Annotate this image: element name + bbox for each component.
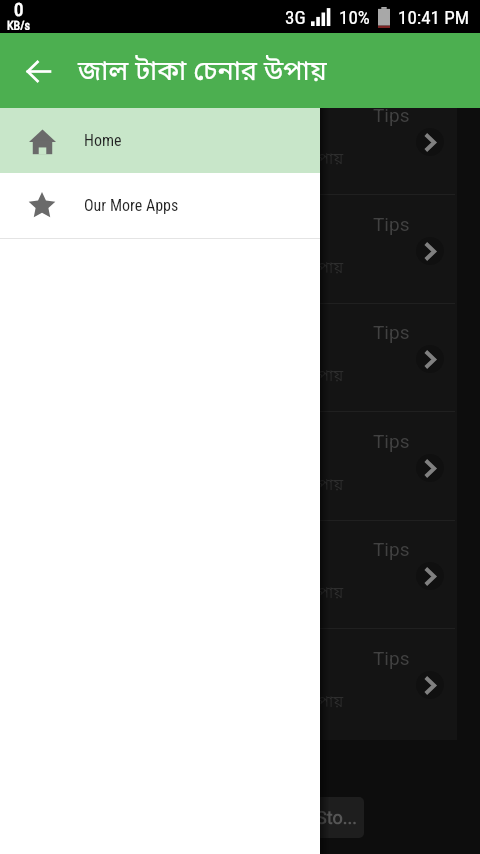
button[interactable]: Tips xyxy=(0,195,457,304)
button[interactable]: Tips xyxy=(0,412,457,521)
staticText: Tips xyxy=(373,647,410,669)
staticText: জাল টাকা চেনার উপায় xyxy=(196,692,344,713)
button[interactable]: Home xyxy=(0,108,320,173)
button[interactable]: Open item xyxy=(416,454,444,482)
button[interactable]: Our More Apps xyxy=(0,173,320,238)
staticText: 10% xyxy=(339,6,370,28)
button[interactable]: Open item xyxy=(416,237,444,265)
staticText: জাল টাকা চেনার উপায় xyxy=(196,149,344,170)
staticText: Our More Apps xyxy=(84,196,179,215)
staticText: Tips xyxy=(373,104,410,126)
staticText: Tips xyxy=(373,321,410,343)
staticText: জাল টাকা চেনার উপায় xyxy=(196,583,344,604)
button[interactable]: Sto... xyxy=(245,797,364,838)
button[interactable]: Open item xyxy=(416,128,444,156)
button[interactable]: Back xyxy=(14,47,62,95)
staticText: জাল টাকা চেনার উপায় xyxy=(78,55,327,91)
staticText: জাল টাকা চেনার উপায় xyxy=(196,366,344,387)
staticText: Tips xyxy=(373,213,410,235)
button[interactable]: Open item xyxy=(416,671,444,699)
staticText: Tips xyxy=(373,538,410,560)
staticText: 10:41 PM xyxy=(398,6,470,28)
button[interactable]: Tips xyxy=(0,629,457,738)
staticText: Sto... xyxy=(316,807,357,828)
staticText: Tips xyxy=(373,430,410,452)
staticText: জাল টাকা চেনার উপায় xyxy=(196,258,344,279)
button[interactable]: Tips xyxy=(0,303,457,412)
staticText: 0 xyxy=(14,0,24,20)
button[interactable]: Open item xyxy=(416,562,444,590)
staticText: Home xyxy=(84,131,122,150)
button[interactable]: Tips xyxy=(0,86,457,195)
button[interactable]: Open item xyxy=(416,345,444,373)
staticText: 3G xyxy=(285,6,306,28)
staticText: KB/s xyxy=(7,19,31,30)
staticText: জাল টাকা চেনার উপায় xyxy=(196,475,344,496)
button[interactable]: Tips xyxy=(0,520,457,629)
